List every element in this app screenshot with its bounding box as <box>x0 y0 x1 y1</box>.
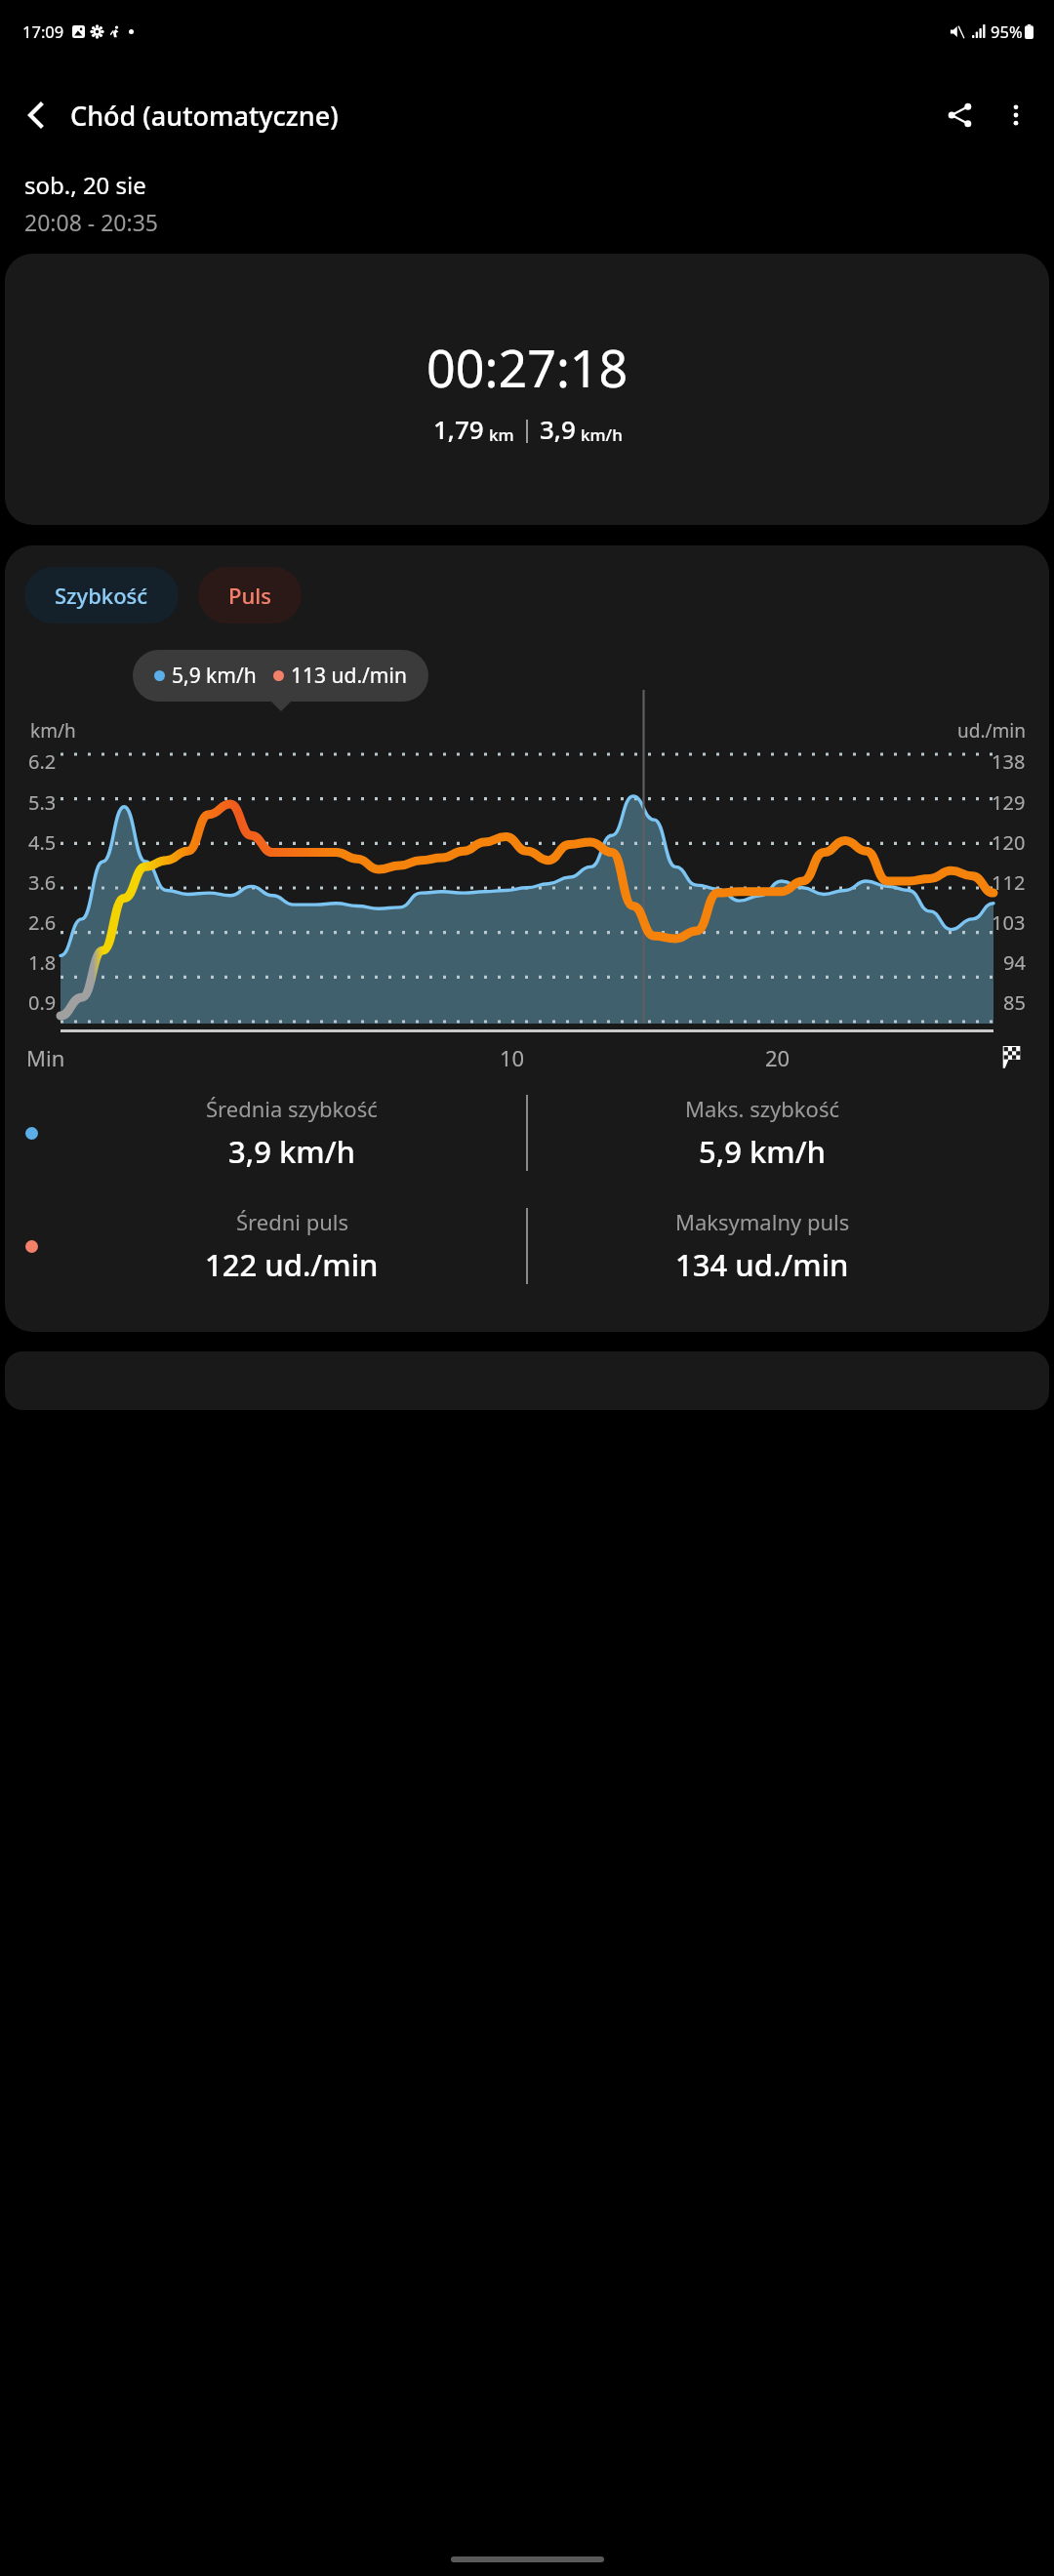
staticText: 5.3 <box>28 789 57 816</box>
button[interactable]: 00:27:18 <box>5 254 1049 525</box>
staticText: km/h <box>581 423 623 446</box>
staticText: Maksymalny puls <box>675 1207 850 1236</box>
button[interactable]: More options <box>988 87 1044 143</box>
staticText: Średnia szybkość <box>206 1094 378 1123</box>
staticText: 129 <box>992 789 1026 816</box>
staticText: Chód (automatyczne) <box>70 98 339 134</box>
staticText: 17:09 <box>22 20 64 42</box>
staticText: sob., 20 sie <box>24 169 146 201</box>
staticText: 113 ud./min <box>291 662 407 690</box>
staticText: 3.6 <box>28 869 57 896</box>
button[interactable]: Średnia szybkość <box>58 1094 526 1172</box>
staticText: 3,9 km/h <box>228 1131 356 1172</box>
staticText: 120 <box>992 829 1026 856</box>
staticText: ud./min <box>957 718 1026 744</box>
button[interactable]: Szybkość <box>24 567 179 624</box>
staticText: km <box>489 423 514 446</box>
staticText: 2.6 <box>28 909 57 936</box>
button[interactable]: Średni puls <box>58 1207 526 1285</box>
staticText: 134 ud./min <box>675 1244 849 1285</box>
staticText: Min <box>26 1043 65 1072</box>
button[interactable]: Puls <box>198 567 302 624</box>
staticText: 95% <box>991 20 1023 42</box>
staticText: Szybkość <box>55 581 148 610</box>
staticText: 5,9 km/h <box>699 1131 827 1172</box>
staticText: 1.8 <box>28 949 57 976</box>
staticText: 10 <box>500 1043 525 1072</box>
button[interactable]: Share <box>933 88 988 142</box>
staticText: 103 <box>992 909 1026 936</box>
staticText: 0.9 <box>28 989 57 1016</box>
staticText: 122 ud./min <box>205 1244 379 1285</box>
staticText: Średni puls <box>236 1207 348 1236</box>
staticText: 20 <box>765 1043 790 1072</box>
staticText: 138 <box>992 748 1026 775</box>
staticText: 5,9 km/h <box>172 662 257 690</box>
button[interactable]: Expand chart <box>994 1040 1028 1073</box>
staticText: km/h <box>30 718 76 744</box>
button[interactable]: Maksymalny puls <box>528 1207 996 1285</box>
staticText: 00:27:18 <box>426 333 628 402</box>
button[interactable] <box>5 1351 1049 1410</box>
staticText: 1,79 <box>433 412 484 446</box>
staticText: 6.2 <box>28 748 57 775</box>
button[interactable]: Back <box>10 88 64 142</box>
staticText: Puls <box>228 581 271 610</box>
staticText: Maks. szybkość <box>685 1094 839 1123</box>
staticText: 20:08 - 20:35 <box>24 207 158 237</box>
staticText: 3,9 <box>540 412 576 446</box>
staticText: 94 <box>1003 949 1026 976</box>
staticText: 112 <box>992 869 1026 896</box>
button[interactable]: Maks. szybkość <box>528 1094 996 1172</box>
staticText: 4.5 <box>28 829 57 856</box>
staticText: 85 <box>1003 989 1026 1016</box>
